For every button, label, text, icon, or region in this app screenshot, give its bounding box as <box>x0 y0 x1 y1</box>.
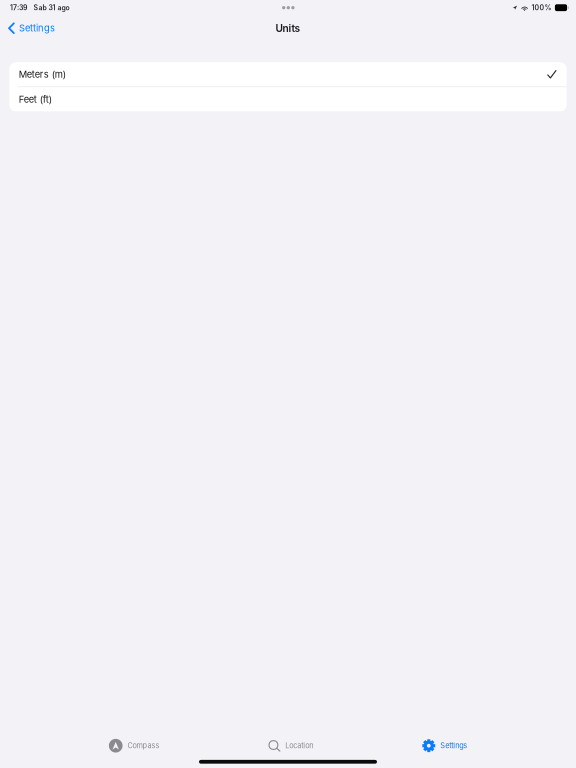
staticText: Units <box>275 22 300 34</box>
staticText: Meters (m) <box>19 69 66 80</box>
staticText: Feet (ft) <box>19 94 52 105</box>
button[interactable]: Feet (ft) <box>9 87 567 111</box>
button[interactable]: Compass <box>109 737 159 755</box>
staticText: Compass <box>127 741 159 750</box>
staticText: Location <box>285 741 313 750</box>
button[interactable]: Settings <box>422 737 467 755</box>
button[interactable]: Settings <box>0 14 63 42</box>
staticText: Sab 31 ago <box>33 3 69 12</box>
staticText: 100% <box>532 3 552 12</box>
staticText: Settings <box>19 23 55 34</box>
staticText: Settings <box>440 741 467 750</box>
button[interactable]: Meters (m) <box>9 62 567 86</box>
staticText: 17:39 <box>10 3 27 12</box>
button[interactable]: Location <box>268 737 313 755</box>
